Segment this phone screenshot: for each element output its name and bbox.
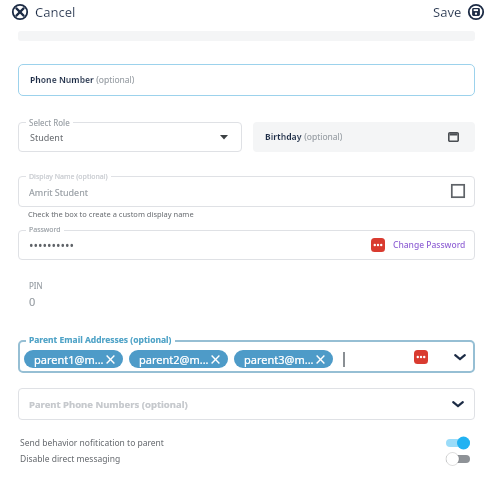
staticText: Amrit Student: [29, 186, 88, 198]
button[interactable]: parent1@m...: [24, 350, 123, 368]
button[interactable]: Change Password: [371, 238, 466, 252]
button[interactable]: [18, 340, 475, 373]
staticText: parent2@m...: [139, 352, 209, 367]
staticText: Send behavior nofitication to parent: [20, 437, 164, 449]
staticText: Phone Number: [30, 74, 94, 86]
button[interactable]: parent2@m...: [129, 350, 228, 368]
button[interactable]: Save: [431, 0, 487, 24]
button[interactable]: [18, 122, 242, 152]
other: Expand: [454, 351, 466, 363]
button[interactable]: Cancel: [9, 0, 78, 24]
staticText: 0: [29, 294, 36, 309]
staticText: (optional): [94, 74, 135, 86]
staticText: Password: [29, 225, 61, 235]
other: Expand: [452, 398, 464, 410]
button[interactable]: [18, 176, 475, 207]
staticText: ••••••••••: [29, 237, 75, 253]
button[interactable]: Birthday: [253, 122, 475, 152]
button[interactable]: [18, 388, 475, 420]
staticText: Check the box to create a custom display…: [28, 209, 194, 219]
staticText: Student: [30, 131, 64, 143]
staticText: parent3@m...: [244, 352, 314, 367]
staticText: Parent Phone Numbers (optional): [29, 398, 188, 411]
staticText: parent1@m...: [34, 352, 104, 367]
button[interactable]: Send behavior nofitication to parent: [18, 436, 470, 450]
staticText: Cancel: [35, 3, 76, 21]
staticText: Save: [433, 3, 462, 21]
button[interactable]: Disable direct messaging: [18, 452, 470, 466]
staticText: PIN: [29, 280, 43, 291]
button[interactable]: Create custom display name: [451, 184, 465, 198]
staticText: Select Role: [29, 117, 70, 128]
staticText: Display Name (optional): [29, 172, 108, 182]
staticText: Change Password: [393, 239, 466, 251]
staticText: (optional): [302, 131, 343, 143]
button[interactable]: parent3@m...: [234, 350, 333, 368]
staticText: Birthday: [265, 131, 302, 143]
staticText: Parent Email Addresses (optional): [29, 334, 172, 346]
staticText: Disable direct messaging: [20, 453, 121, 465]
button[interactable]: Phone Number: [18, 64, 475, 96]
